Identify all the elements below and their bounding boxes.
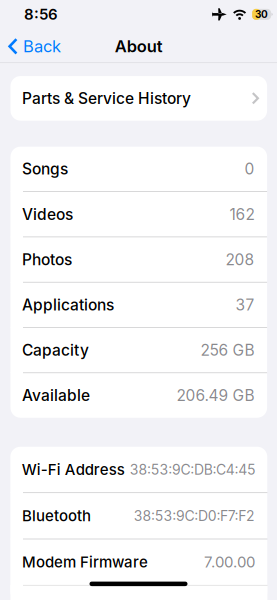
button[interactable]: Back bbox=[8, 36, 61, 56]
staticText: Bluetooth bbox=[22, 507, 91, 525]
staticText: 8:56 bbox=[24, 5, 58, 23]
staticText: Modem Firmware bbox=[22, 553, 148, 571]
staticText: 37 bbox=[236, 295, 255, 314]
staticText: Parts & Service History bbox=[22, 89, 191, 108]
staticText: Available bbox=[22, 386, 90, 405]
staticText: Capacity bbox=[22, 341, 89, 360]
staticText: 30 bbox=[255, 8, 268, 20]
staticText: Videos bbox=[22, 205, 73, 224]
staticText: 0 bbox=[245, 160, 255, 178]
staticText: 38:53:9C:DB:C4:45 bbox=[130, 461, 255, 478]
staticText: 38:53:9C:D0:F7:F2 bbox=[134, 507, 255, 524]
staticText: 7.00.00 bbox=[204, 553, 255, 571]
staticText: Applications bbox=[22, 295, 114, 314]
staticText: 208 bbox=[226, 250, 255, 269]
staticText: 206.49 GB bbox=[177, 386, 255, 405]
staticText: Wi-Fi Address bbox=[22, 460, 125, 479]
staticText: Songs bbox=[22, 160, 68, 178]
staticText: About bbox=[115, 36, 163, 56]
staticText: 256 GB bbox=[201, 341, 255, 360]
staticText: 162 bbox=[230, 205, 255, 224]
staticText: Back bbox=[23, 36, 61, 56]
button[interactable]: Parts & Service History bbox=[10, 76, 267, 121]
staticText: Photos bbox=[22, 250, 72, 269]
